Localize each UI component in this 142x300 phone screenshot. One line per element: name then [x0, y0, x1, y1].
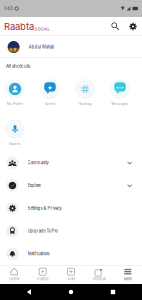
button[interactable]: Messages	[102, 79, 137, 109]
staticText: SOCIAL	[34, 27, 49, 31]
button[interactable]: Upgrade To Pro	[0, 220, 142, 242]
staticText: Raabta	[4, 21, 34, 32]
staticText: Notifications	[28, 251, 50, 256]
staticText: Videos	[37, 277, 49, 281]
button[interactable]: Hashtag	[67, 79, 102, 109]
staticText: Political	[93, 277, 106, 281]
button[interactable]: Settings	[124, 17, 142, 36]
button[interactable]: Home	[0, 265, 28, 284]
staticText: Add	[67, 277, 74, 281]
button[interactable]: Saved	[32, 79, 67, 109]
staticText: Settings & Privacy	[28, 206, 62, 211]
button[interactable]: Notifications	[0, 242, 142, 265]
button[interactable]: Explore	[0, 174, 142, 197]
staticText: Upgrade To Pro	[28, 228, 58, 233]
staticText: Explore	[28, 183, 41, 188]
staticText: More	[124, 277, 132, 281]
button[interactable]: Videos	[28, 265, 57, 284]
button[interactable]: Search	[107, 17, 124, 36]
staticText: Saved	[45, 102, 55, 106]
staticText: Community	[28, 160, 49, 165]
staticText: 1:43	[4, 6, 13, 11]
staticText: Home	[9, 277, 19, 281]
staticText: Abdul Wahab	[29, 44, 55, 49]
button[interactable]: Add	[57, 265, 85, 284]
button[interactable]: Settings & Privacy	[0, 197, 142, 220]
staticText: All shotcuts	[6, 63, 30, 69]
staticText: My Profile	[7, 102, 23, 106]
staticText: Spaces	[9, 142, 21, 146]
button[interactable]: My Profile	[0, 79, 32, 109]
button[interactable]: Spaces	[0, 119, 32, 149]
button[interactable]: Political	[85, 265, 114, 284]
button[interactable]: Back	[16, 284, 42, 300]
button[interactable]: Home	[58, 284, 84, 300]
button[interactable]: More	[114, 265, 142, 284]
button[interactable]: Raabta	[0, 17, 49, 36]
staticText: Hashtag	[78, 102, 91, 106]
button[interactable]: Community	[0, 151, 142, 174]
staticText: Messages	[111, 102, 128, 106]
button[interactable]: Recent apps	[100, 284, 126, 300]
button[interactable]: Abdul Wahab	[0, 36, 142, 58]
